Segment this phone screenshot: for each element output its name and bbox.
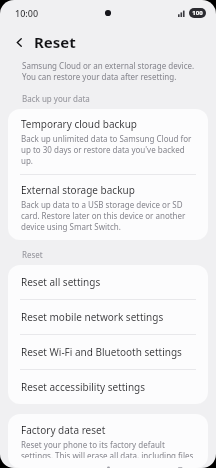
button[interactable]: Reset all settings bbox=[8, 265, 208, 299]
staticText: Factory data reset bbox=[21, 423, 106, 437]
staticText: Reset Wi-Fi and Bluetooth settings bbox=[21, 345, 182, 359]
staticText: Back up unlimited data to Samsung Cloud … bbox=[21, 133, 195, 166]
staticText: Temporary cloud backup bbox=[21, 117, 138, 131]
staticText: Reset all settings bbox=[21, 275, 101, 289]
button[interactable]: Reset accessibility settings bbox=[8, 370, 208, 404]
button[interactable]: Back bbox=[8, 31, 30, 53]
staticText: Back up data to a USB storage device or … bbox=[21, 199, 195, 232]
button[interactable]: Factory data reset bbox=[8, 414, 208, 468]
staticText: External storage backup bbox=[21, 183, 135, 197]
staticText: 10:00 bbox=[15, 7, 39, 19]
staticText: Reset accessibility settings bbox=[21, 380, 146, 394]
button[interactable]: Reset Wi-Fi and Bluetooth settings bbox=[8, 335, 208, 369]
staticText: Reset mobile network settings bbox=[21, 310, 164, 324]
staticText: Samsung Cloud or an external storage dev… bbox=[22, 60, 202, 82]
staticText: Reset bbox=[34, 32, 76, 52]
staticText: Reset bbox=[22, 249, 43, 260]
button[interactable]: Reset mobile network settings bbox=[8, 300, 208, 334]
staticText: Reset your phone to its factory default … bbox=[21, 439, 195, 458]
button[interactable]: External storage backup bbox=[8, 175, 208, 240]
button[interactable]: Temporary cloud backup bbox=[8, 109, 208, 174]
staticText: 100 bbox=[192, 9, 203, 17]
staticText: Back up your data bbox=[22, 93, 90, 104]
